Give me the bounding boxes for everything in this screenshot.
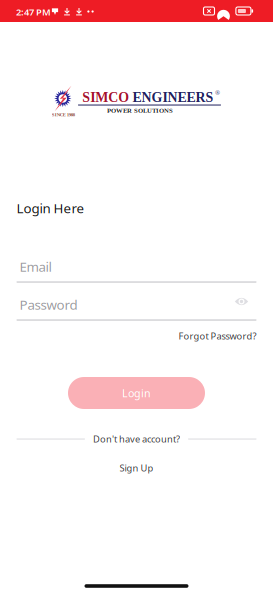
staticText: POWER SOLUTIONS (107, 107, 173, 114)
button[interactable]: Forgot Password? (16, 329, 256, 343)
staticText: 2:47 PM (16, 6, 51, 18)
button[interactable]: Email (19, 253, 227, 279)
staticText: ® (215, 89, 220, 96)
button[interactable]: Password (19, 291, 227, 317)
button[interactable]: Login (68, 377, 205, 409)
staticText: Sign Up (119, 462, 153, 474)
button[interactable]: Show password (231, 292, 251, 310)
staticText: Login Here (16, 199, 84, 217)
staticText: Email (19, 258, 51, 275)
staticText: Login (122, 386, 151, 400)
staticText: Password (19, 296, 77, 313)
staticText: Don't have account? (93, 433, 180, 445)
button[interactable]: Sign Up (76, 460, 196, 476)
staticText: Forgot Password? (178, 330, 256, 342)
staticText: ENGINEERS (132, 89, 213, 105)
staticText: SINCE 1988 (52, 112, 75, 117)
staticText: SIMCO (82, 89, 129, 105)
